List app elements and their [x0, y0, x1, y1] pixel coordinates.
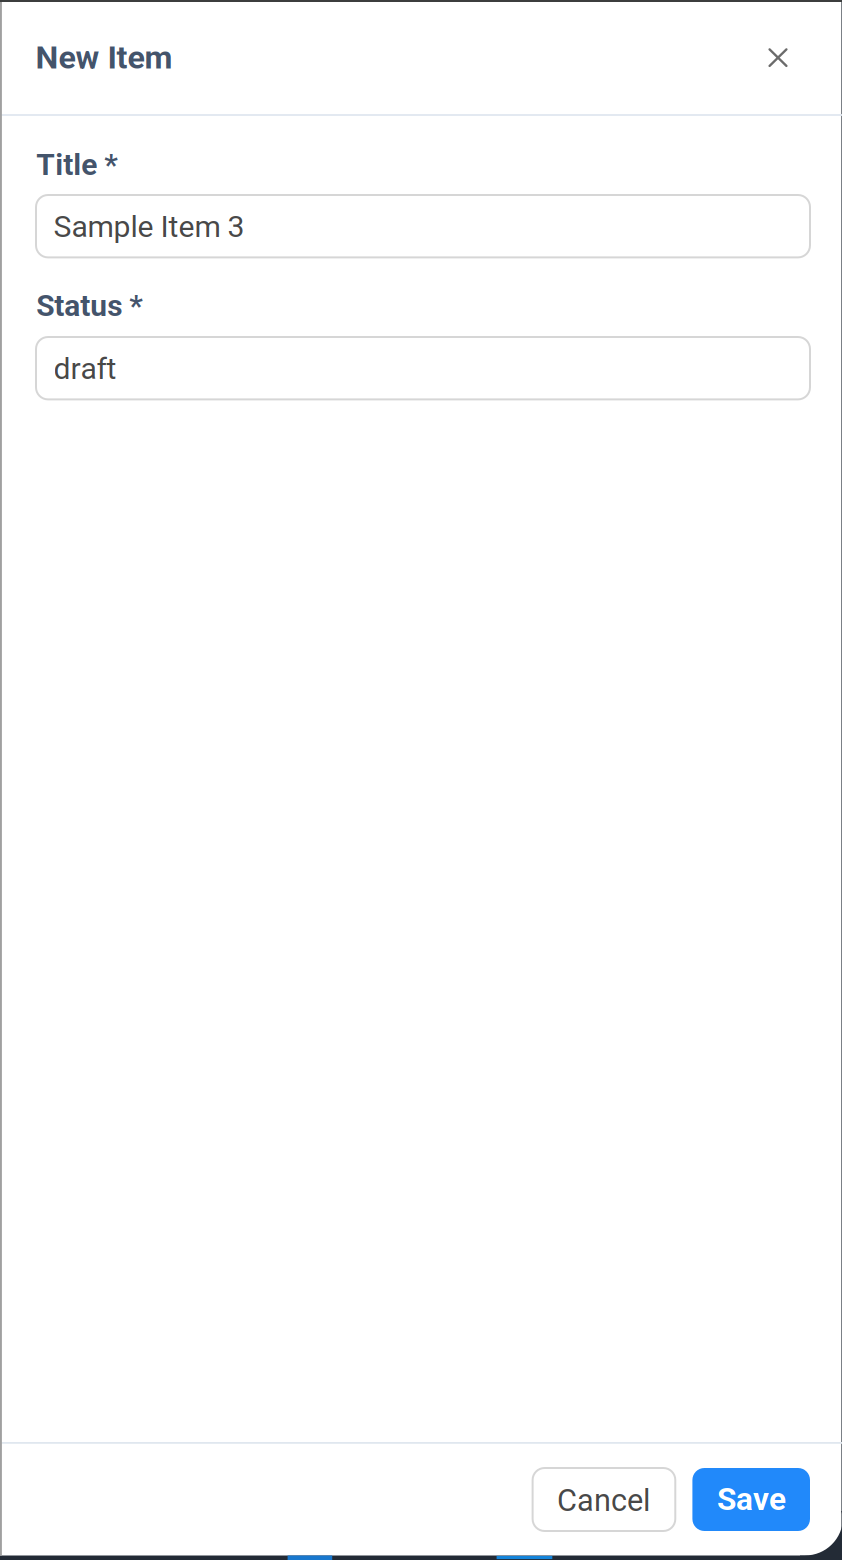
- staticText: Cancel: [557, 1482, 650, 1518]
- button[interactable]: Close: [755, 36, 801, 80]
- staticText: Status *: [36, 288, 143, 323]
- staticText: draft: [53, 351, 116, 386]
- button[interactable]: Cancel: [533, 1468, 675, 1531]
- staticText: Title *: [36, 147, 118, 182]
- staticText: Save: [717, 1481, 786, 1518]
- button[interactable]: Save: [692, 1468, 810, 1531]
- staticText: Sample Item 3: [53, 209, 244, 244]
- staticText: New Item: [35, 39, 172, 76]
